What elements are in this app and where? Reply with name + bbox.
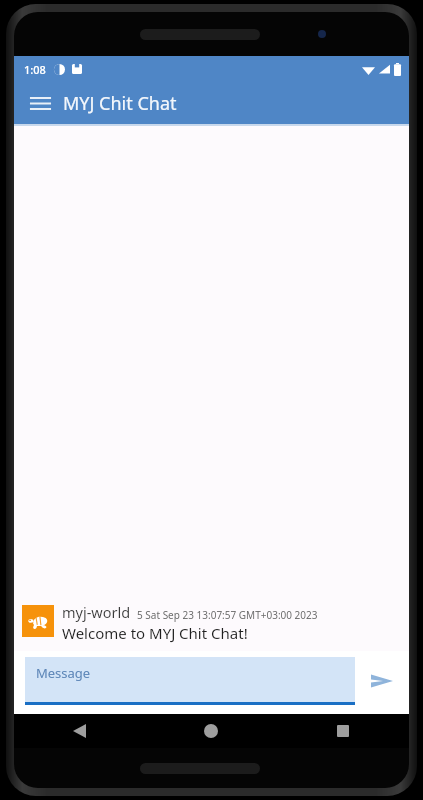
button[interactable]: Message bbox=[25, 657, 355, 705]
button[interactable]: Back bbox=[14, 714, 145, 748]
button[interactable]: myj-world bbox=[14, 598, 409, 645]
staticText: MYJ Chit Chat bbox=[63, 91, 177, 116]
staticText: Welcome to MYJ Chit Chat! bbox=[62, 623, 248, 643]
staticText: 5 Sat Sep 23 13:07:57 GMT+03:00 2023 bbox=[137, 608, 318, 622]
button[interactable]: Recent apps bbox=[277, 714, 409, 748]
button[interactable]: Open navigation menu bbox=[22, 85, 58, 121]
staticText: 1:08 bbox=[24, 62, 46, 77]
button[interactable]: Send message bbox=[363, 662, 401, 700]
button[interactable]: Home bbox=[145, 714, 277, 748]
staticText: Message bbox=[36, 664, 91, 682]
staticText: myj-world bbox=[62, 602, 131, 622]
